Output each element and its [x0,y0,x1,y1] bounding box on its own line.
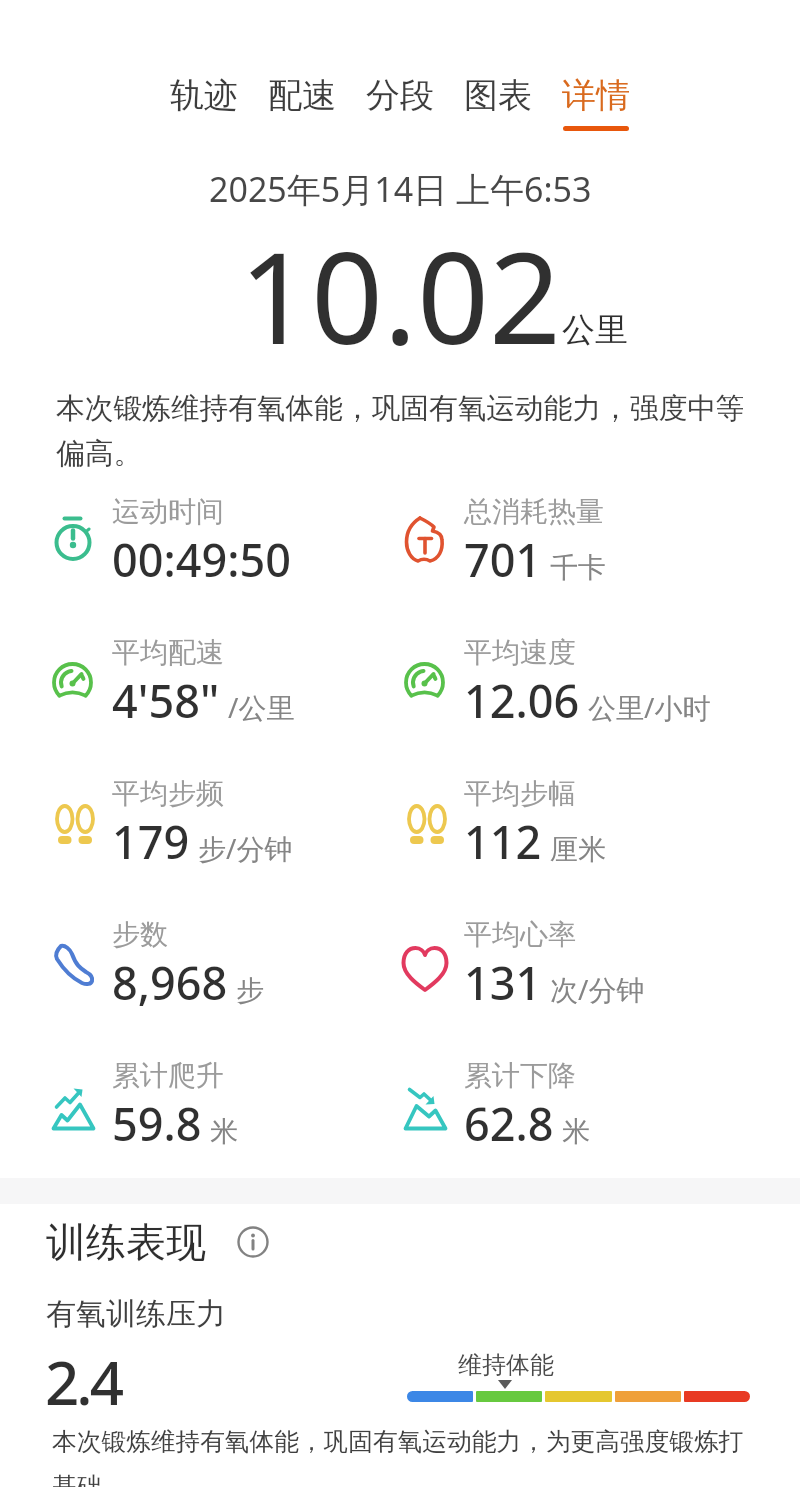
staticText: 62.8 [464,1093,554,1154]
staticText: 步/分钟 [198,829,293,867]
button[interactable]: 平均心率 [404,917,645,1013]
staticText: 平均配速 [112,635,224,670]
staticText: 本次锻炼维持有氧体能，巩固有氧运动能力，为更高强度锻炼打 基础。 [52,1426,744,1487]
staticText: 分段 [366,74,434,117]
staticText: 平均步频 [112,776,224,811]
staticText: 厘米 [550,832,606,867]
staticText: 2.4 [45,1341,121,1423]
staticText: 累计爬升 [112,1058,224,1093]
staticText: 详情 [562,74,630,117]
staticText: 平均心率 [464,917,576,952]
staticText: 累计下降 [464,1058,576,1093]
staticText: 12.06 [464,670,580,731]
button[interactable]: 配速 [268,74,336,131]
button[interactable]: 累计下降 [404,1058,590,1154]
staticText: 轨迹 [170,74,238,117]
staticText: 配速 [268,74,336,117]
button[interactable]: 运动时间 [52,494,291,590]
staticText: 米 [210,1114,238,1149]
button[interactable]: 平均配速 [52,635,295,731]
button[interactable]: 平均速度 [404,635,711,731]
staticText: 步 [236,973,264,1008]
staticText: 本次锻炼维持有氧体能，巩固有氧运动能力，强度中等 偏高。 [56,390,745,471]
staticText: 2025年5月14日 上午6:53 [209,166,592,212]
staticText: 00:49:50 [112,529,291,590]
button[interactable]: 平均步频 [52,776,293,872]
button[interactable]: 训练表现 [46,1217,269,1267]
staticText: 59.8 [112,1093,202,1154]
staticText: 平均步幅 [464,776,576,811]
button[interactable]: 轨迹 [170,74,238,131]
staticText: 图表 [464,74,532,117]
staticText: 维持体能 [458,1350,554,1380]
button[interactable]: 累计爬升 [52,1058,238,1154]
staticText: 10.02 [239,209,562,381]
staticText: 701 [464,529,542,590]
staticText: 131 [464,952,542,1013]
button[interactable]: 图表 [464,74,532,131]
staticText: 有氧训练压力 [46,1295,226,1333]
staticText: 179 [112,811,190,872]
staticText: 步数 [112,917,168,952]
staticText: 112 [464,811,542,872]
staticText: 4'58" [112,670,220,731]
button[interactable]: 详情 [562,74,630,131]
staticText: 米 [562,1114,590,1149]
button[interactable]: 步数 [52,917,264,1013]
button[interactable]: 平均步幅 [404,776,606,872]
staticText: 总消耗热量 [464,494,604,529]
staticText: 平均速度 [464,635,576,670]
staticText: 公里/小时 [588,688,711,726]
button[interactable]: 总消耗热量 [404,494,606,590]
staticText: 8,968 [112,952,228,1013]
staticText: 次/分钟 [550,970,645,1008]
button[interactable]: 分段 [366,74,434,131]
staticText: 运动时间 [112,494,224,529]
staticText: 千卡 [550,550,606,585]
staticText: 公里 [562,309,628,351]
staticText: /公里 [228,688,295,726]
staticText: 训练表现 [46,1217,206,1267]
